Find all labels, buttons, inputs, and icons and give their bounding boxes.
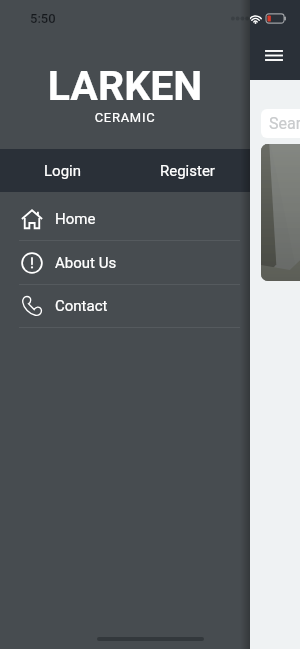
staticText: 5:50 xyxy=(30,11,56,26)
staticText: Contact xyxy=(55,297,108,315)
staticText: About Us xyxy=(55,254,117,272)
button[interactable]: Open navigation menu xyxy=(262,43,286,67)
button[interactable]: About Us xyxy=(0,241,250,284)
staticText: Home xyxy=(55,210,96,228)
staticText: Register xyxy=(160,162,215,180)
button[interactable]: Register xyxy=(125,149,250,192)
button[interactable]: Login xyxy=(0,149,125,192)
button[interactable]: Home xyxy=(0,192,250,240)
button[interactable]: Contact xyxy=(0,285,250,327)
button[interactable]: Search xyxy=(261,109,300,138)
staticText: LARKEN xyxy=(0,62,250,110)
staticText: CERAMIC xyxy=(0,110,250,125)
staticText: Search xyxy=(269,114,300,133)
staticText: Login xyxy=(44,162,81,180)
